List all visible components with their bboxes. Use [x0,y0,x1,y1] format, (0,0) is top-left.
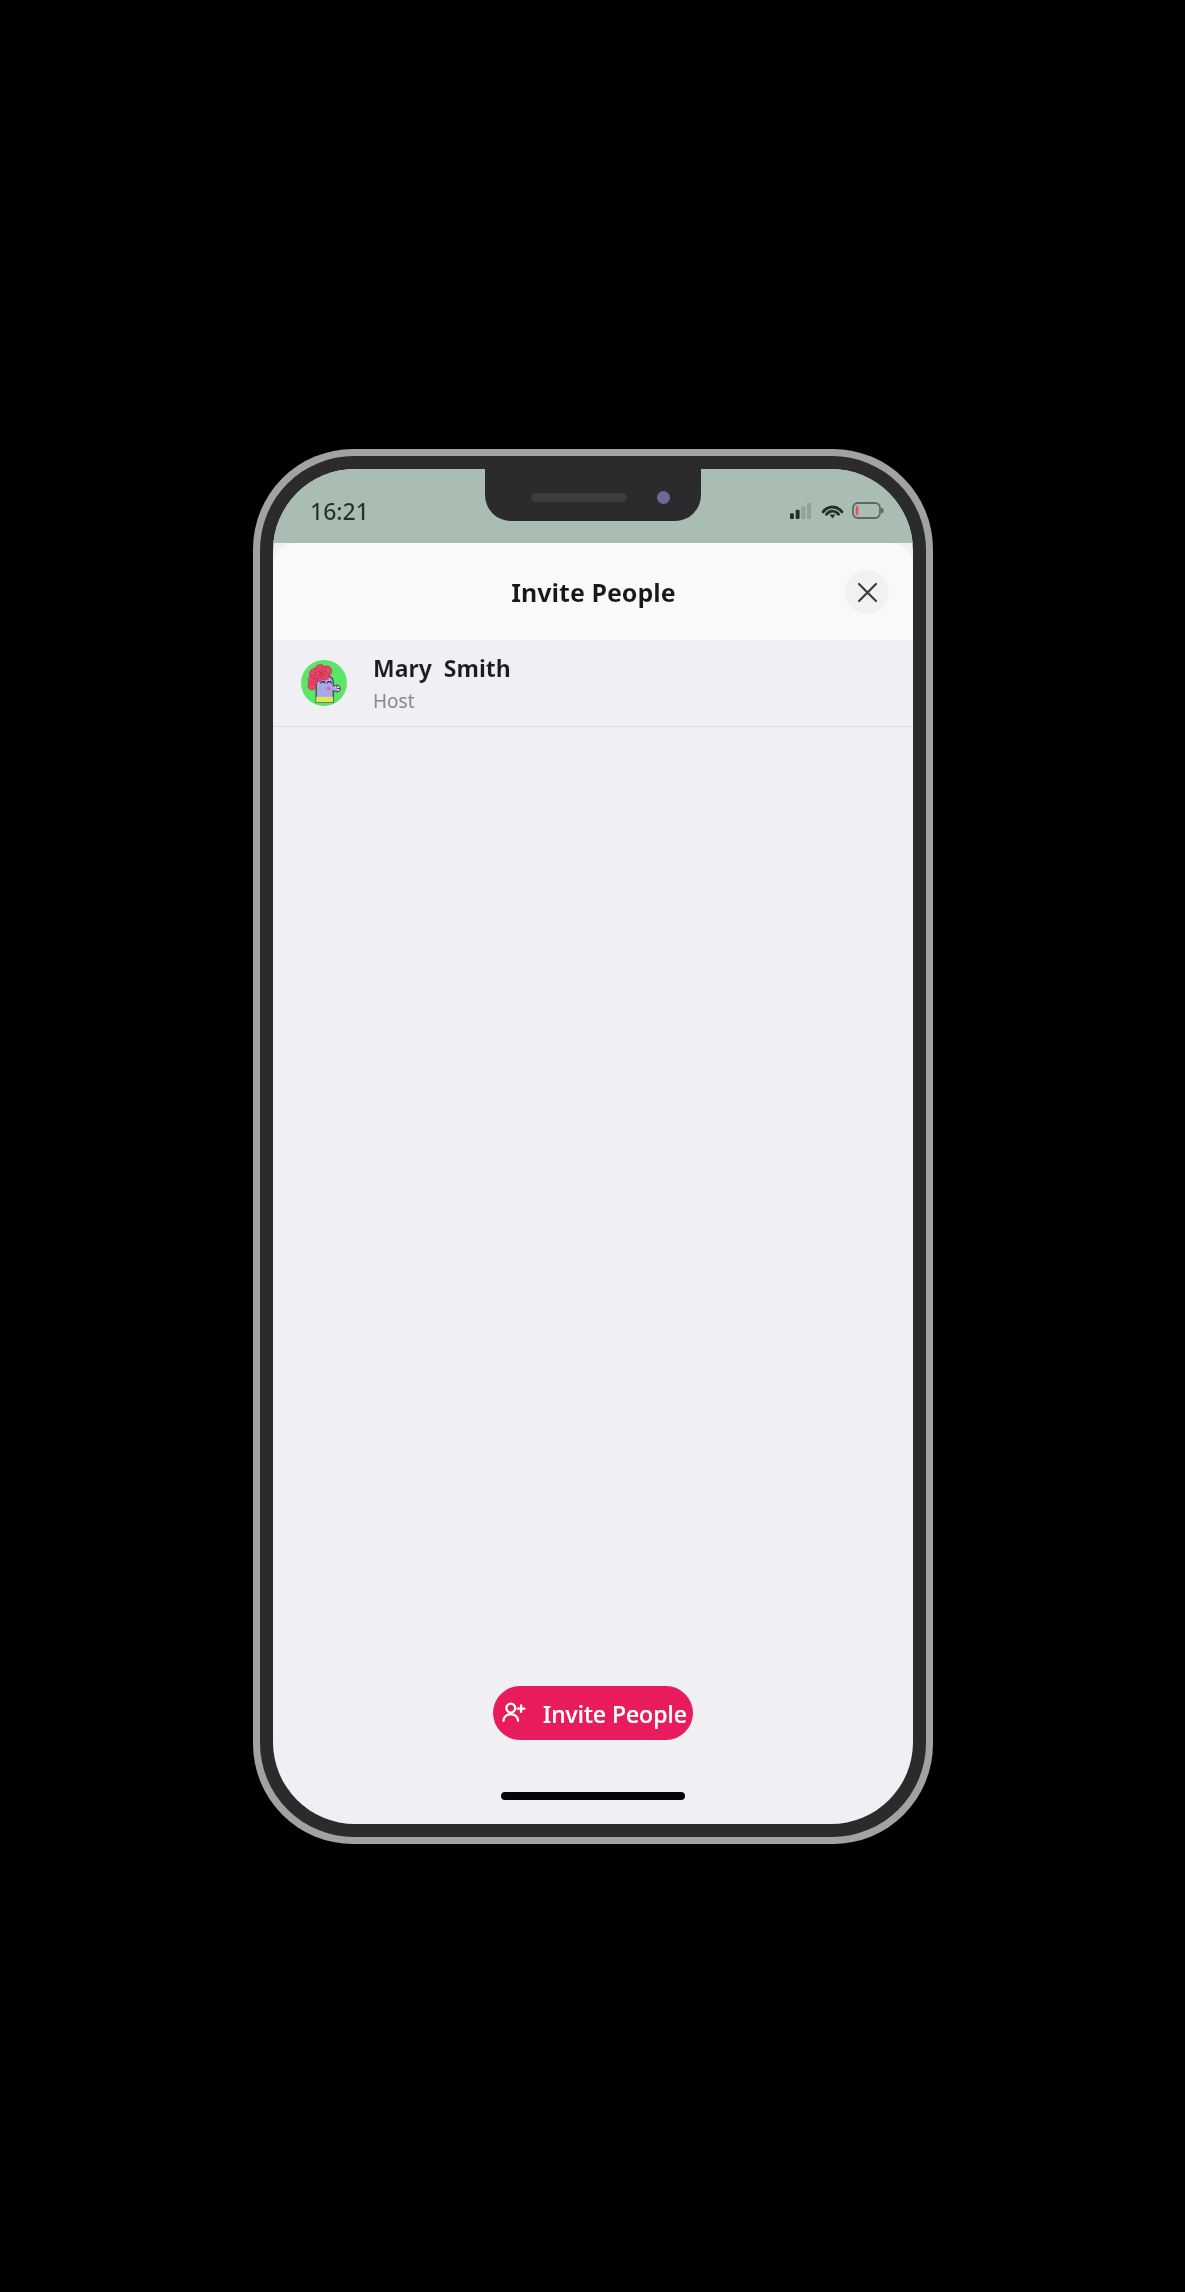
staticText: Host [373,688,415,714]
button[interactable]: Close [845,570,889,614]
button[interactable]: Mary Smith [273,640,913,726]
staticText: Mary Smith [373,652,511,683]
staticText: Invite People [511,575,676,609]
staticText: Invite People [543,1698,687,1729]
staticText: 16:21 [310,495,369,526]
button[interactable]: Invite People [493,1686,693,1740]
